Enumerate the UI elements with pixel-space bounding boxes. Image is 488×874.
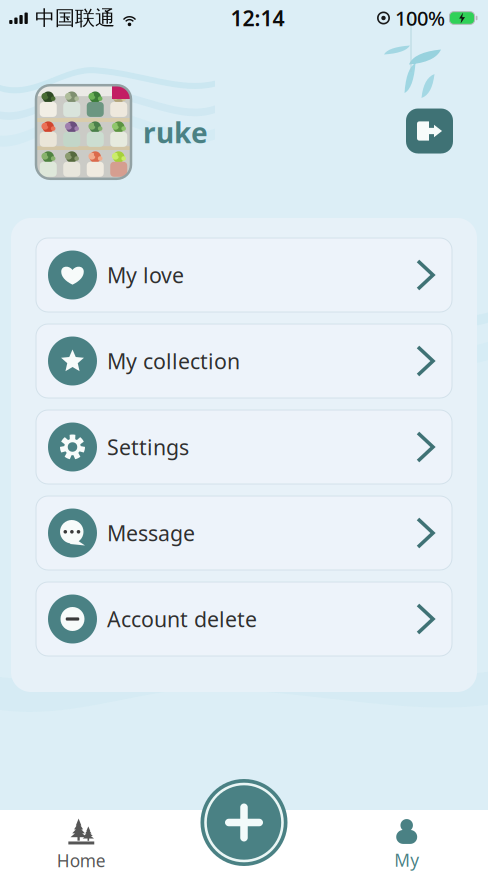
staticText: 12:14 <box>230 4 284 32</box>
staticText: ruke <box>143 114 208 151</box>
staticText: Message <box>107 519 195 547</box>
staticText: 中国联通 <box>35 6 115 30</box>
button[interactable]: Home <box>0 817 163 873</box>
staticText: Home <box>57 849 106 872</box>
button[interactable]: My love <box>36 238 452 312</box>
staticText: My love <box>107 261 184 289</box>
staticText: 100% <box>395 5 445 31</box>
button[interactable]: My collection <box>36 324 452 398</box>
staticText: My <box>394 848 419 871</box>
staticText: My collection <box>107 347 240 375</box>
button[interactable]: Settings <box>36 410 452 484</box>
button[interactable]: Account delete <box>36 582 452 656</box>
button[interactable]: Add <box>200 779 287 866</box>
staticText: Settings <box>107 433 189 461</box>
button[interactable]: Message <box>36 496 452 570</box>
button[interactable]: My <box>325 817 488 873</box>
button[interactable]: Log out <box>406 108 453 153</box>
staticText: Account delete <box>107 605 257 633</box>
